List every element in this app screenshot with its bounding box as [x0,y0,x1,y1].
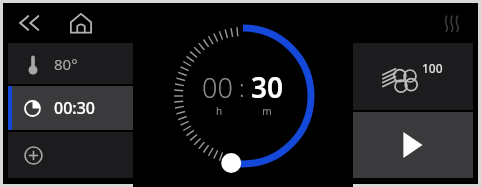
staticText: m [250,104,284,118]
staticText: 00:30 [54,97,95,119]
staticText: 30 [251,68,284,106]
button[interactable]: Fan speed 100 [351,43,473,110]
staticText: : [233,72,251,103]
staticText: 00 [202,69,233,106]
button[interactable]: 80° [8,43,135,84]
staticText: 80° [54,54,78,74]
button[interactable]: Steam [436,7,468,39]
button[interactable]: Add step [8,132,135,178]
staticText: 100 [422,60,443,76]
button[interactable]: Home [61,5,101,41]
button[interactable]: Timer dial [169,22,317,170]
staticText: h [202,104,236,118]
button[interactable]: Start [351,112,473,178]
button[interactable]: Back [9,5,49,41]
button[interactable]: 00:30 [8,86,135,130]
